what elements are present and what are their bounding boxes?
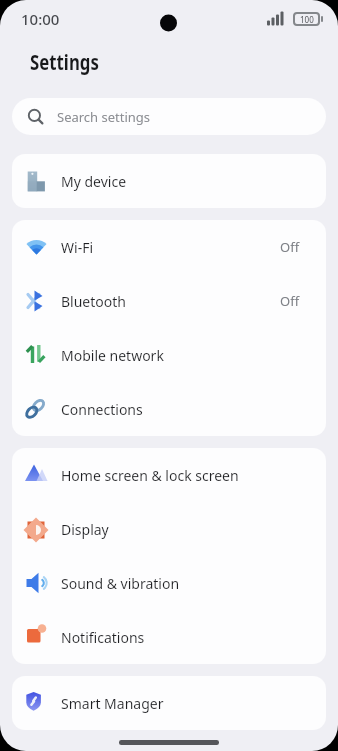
button[interactable]: My device xyxy=(12,154,326,208)
staticText: Mobile network xyxy=(61,346,164,365)
button[interactable]: Wi-Fi xyxy=(12,220,326,274)
staticText: Off xyxy=(280,238,300,256)
button[interactable]: Bluetooth xyxy=(12,274,326,328)
staticText: 100 xyxy=(300,14,314,25)
staticText: Connections xyxy=(61,400,143,419)
staticText: Smart Manager xyxy=(61,694,164,713)
staticText: Settings xyxy=(30,48,100,77)
staticText: Search settings xyxy=(57,108,151,126)
button[interactable]: Sound & vibration xyxy=(12,556,326,610)
button[interactable]: Search settings xyxy=(12,98,326,135)
staticText: Sound & vibration xyxy=(61,574,180,593)
staticText: Display xyxy=(61,520,109,539)
staticText: Notifications xyxy=(61,628,145,647)
button[interactable]: Home screen & lock screen xyxy=(12,448,326,502)
staticText: Home screen & lock screen xyxy=(61,466,239,485)
staticText: Off xyxy=(280,292,300,310)
button[interactable]: Display xyxy=(12,502,326,556)
button[interactable]: Notifications xyxy=(12,610,326,664)
button[interactable]: Connections xyxy=(12,382,326,436)
staticText: 10:00 xyxy=(21,9,60,29)
button[interactable]: Mobile network xyxy=(12,328,326,382)
staticText: My device xyxy=(61,172,127,191)
staticText: Wi-Fi xyxy=(61,238,94,257)
staticText: Bluetooth xyxy=(61,292,126,311)
button[interactable]: Smart Manager xyxy=(12,676,326,730)
